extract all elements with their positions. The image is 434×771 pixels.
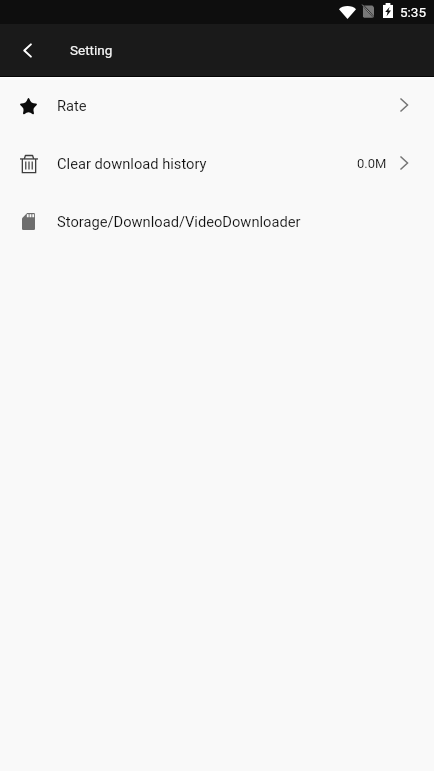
button[interactable]: Back — [8, 31, 46, 69]
staticText: Rate — [57, 97, 87, 114]
staticText: Storage/Download/VideoDownloader — [57, 213, 301, 230]
staticText: 5:35 — [400, 4, 427, 20]
button[interactable]: Rate — [0, 76, 434, 134]
staticText: Setting — [70, 42, 113, 58]
staticText: 0.0M — [357, 156, 387, 171]
button[interactable]: Clear download history — [0, 134, 434, 192]
staticText: Clear download history — [57, 155, 207, 172]
button[interactable]: Storage/Download/VideoDownloader — [0, 192, 434, 250]
